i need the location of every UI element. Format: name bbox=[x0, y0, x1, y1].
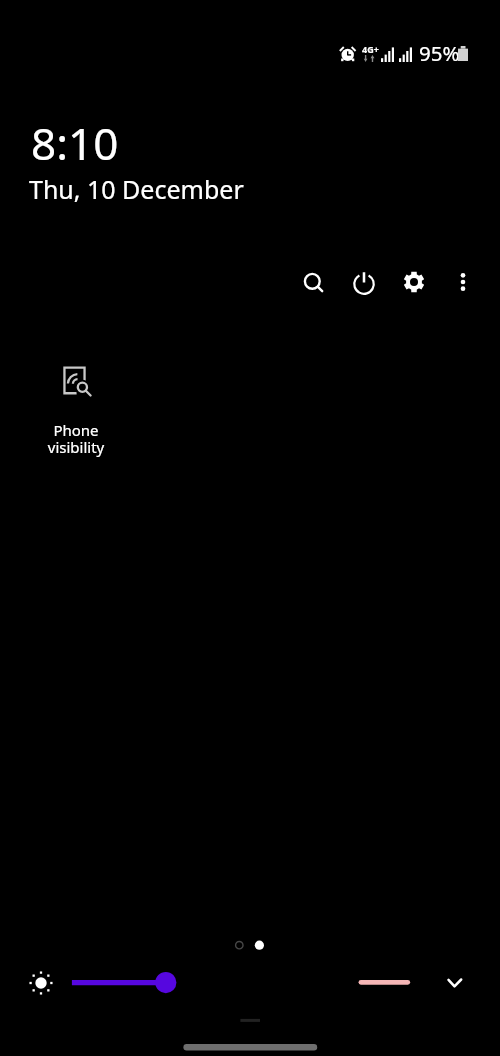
button[interactable]: Phone visibility bbox=[24, 350, 128, 468]
staticText: 8:10 bbox=[31, 113, 119, 173]
staticText: 95% bbox=[419, 39, 460, 67]
button[interactable]: Search bbox=[293, 263, 333, 303]
button[interactable]: Power off bbox=[344, 263, 384, 303]
staticText: Phone visibility bbox=[24, 420, 128, 457]
button[interactable]: Brightness bbox=[27, 969, 55, 997]
button[interactable]: Expand bbox=[438, 963, 478, 1003]
staticText: Thu, 10 December bbox=[29, 172, 244, 206]
button[interactable]: Settings bbox=[394, 262, 434, 302]
button[interactable]: Brightness slider bbox=[62, 961, 188, 1005]
button[interactable]: More options bbox=[443, 262, 483, 302]
staticText: 4G+ bbox=[362, 43, 379, 55]
